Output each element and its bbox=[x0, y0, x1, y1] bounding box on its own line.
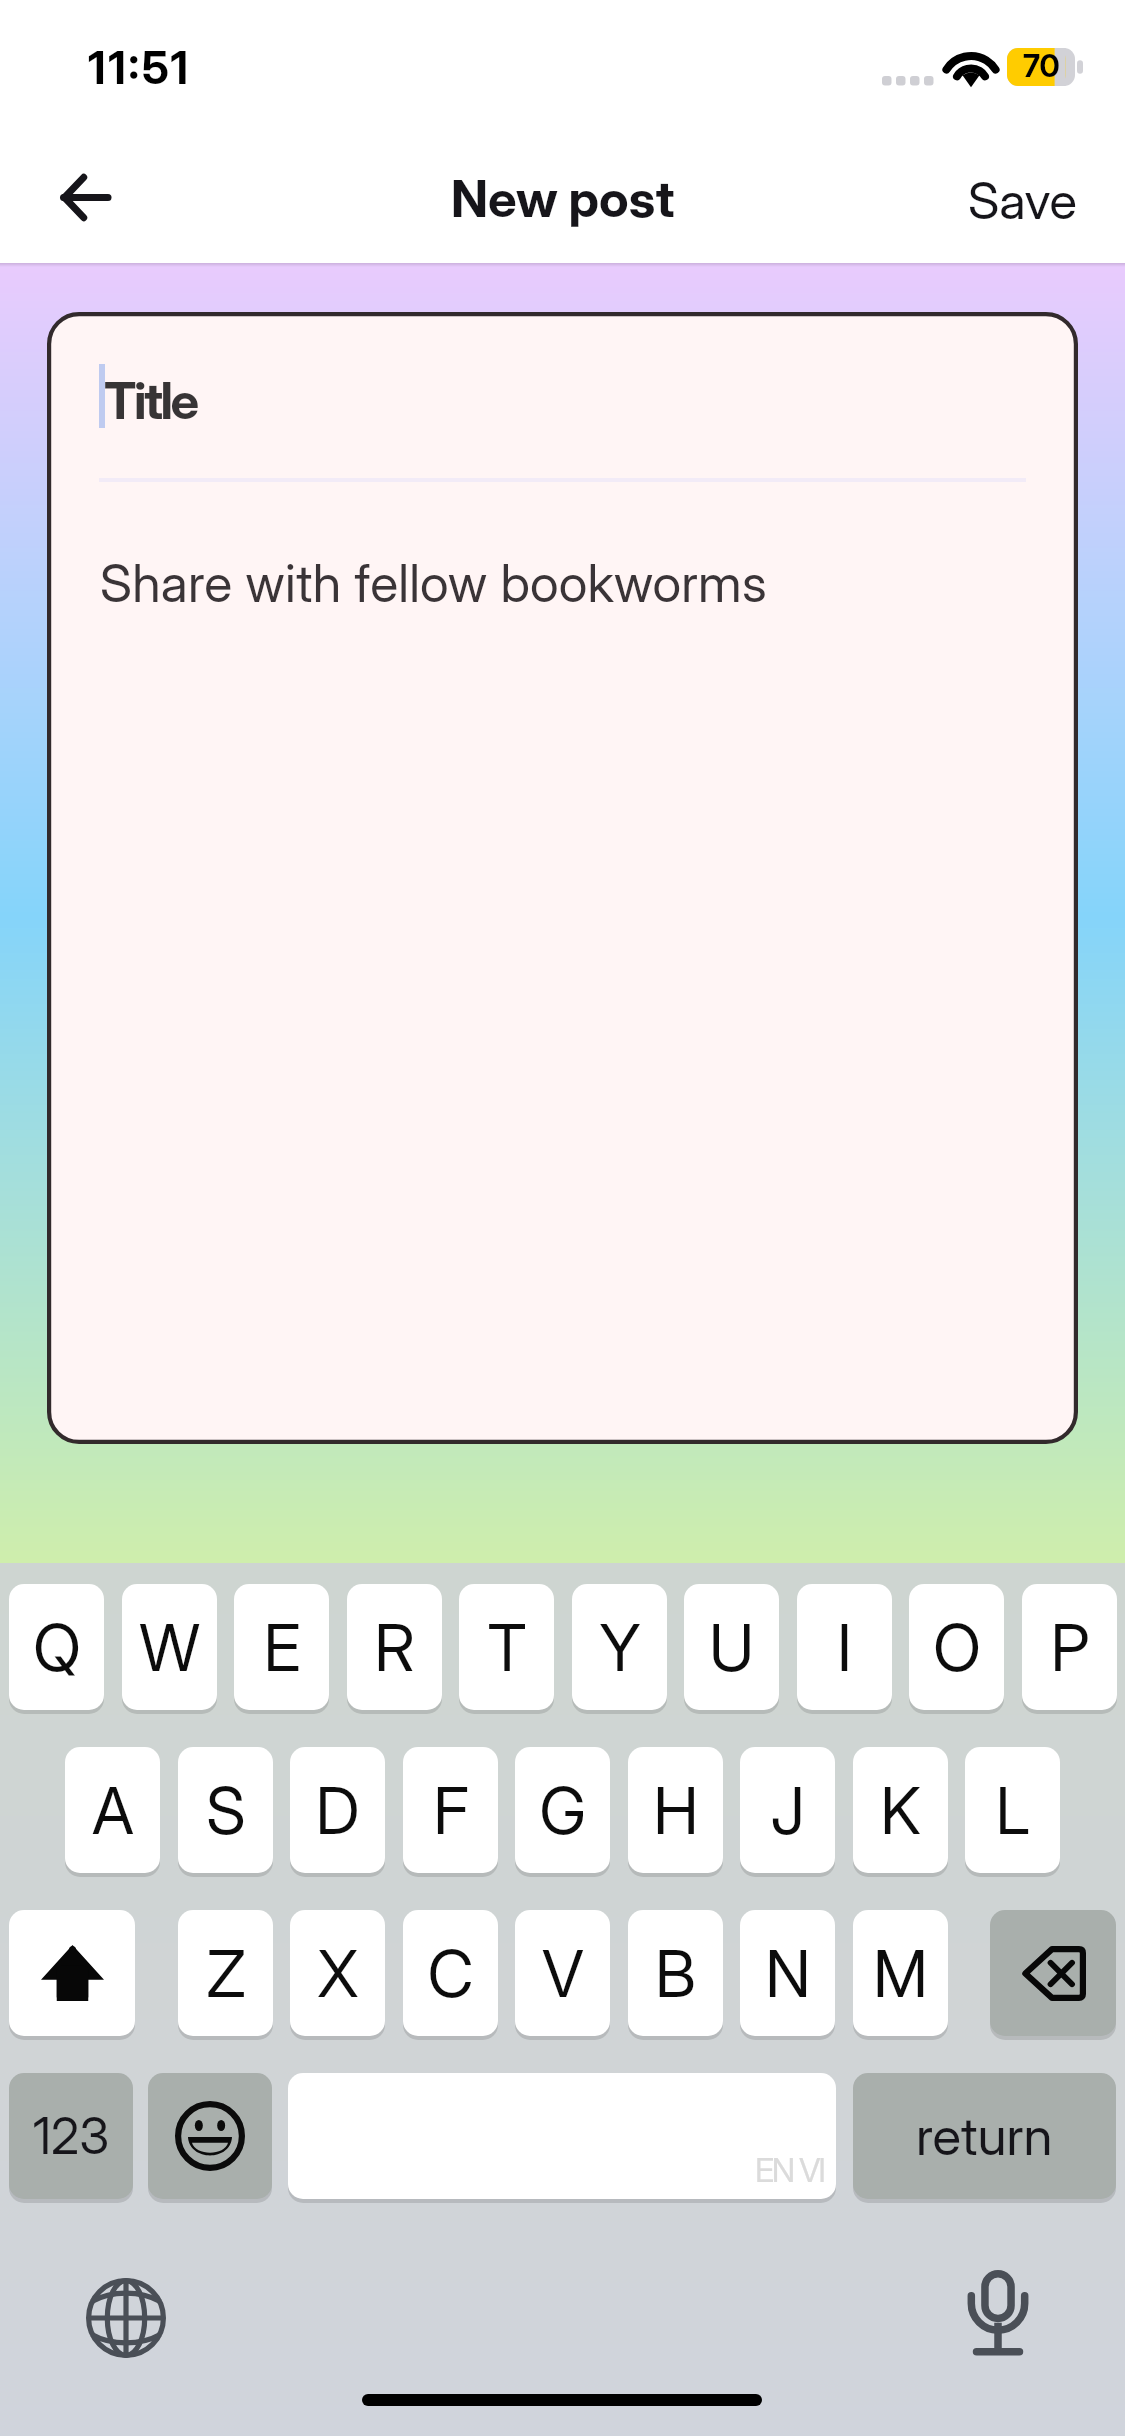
staticText: K bbox=[880, 1772, 921, 1849]
button[interactable]: Backspace bbox=[990, 1910, 1116, 2036]
button[interactable]: V bbox=[515, 1910, 610, 2036]
button[interactable]: U bbox=[684, 1584, 779, 1710]
staticText: J bbox=[770, 1772, 805, 1849]
button[interactable]: A bbox=[65, 1747, 160, 1873]
staticText: I bbox=[837, 1609, 852, 1686]
button[interactable]: Save bbox=[944, 154, 1100, 250]
staticText: Title bbox=[104, 370, 197, 432]
staticText: R bbox=[374, 1609, 415, 1686]
staticText: G bbox=[539, 1772, 586, 1849]
button[interactable]: E bbox=[234, 1584, 329, 1710]
button[interactable]: Shift bbox=[9, 1910, 135, 2036]
button[interactable]: I bbox=[797, 1584, 892, 1710]
button[interactable]: Back bbox=[24, 149, 144, 245]
staticText: E bbox=[263, 1609, 301, 1686]
button[interactable]: Q bbox=[9, 1584, 104, 1710]
button[interactable]: C bbox=[403, 1910, 498, 2036]
staticText: P bbox=[1050, 1609, 1090, 1686]
staticText: C bbox=[427, 1935, 474, 2012]
button[interactable]: return bbox=[853, 2073, 1116, 2199]
staticText: W bbox=[139, 1609, 200, 1686]
button[interactable]: R bbox=[347, 1584, 442, 1710]
staticText: O bbox=[933, 1609, 981, 1686]
staticText: Z bbox=[206, 1935, 246, 2012]
button[interactable]: T bbox=[459, 1584, 554, 1710]
staticText: N bbox=[765, 1935, 811, 2012]
staticText: 70 bbox=[1023, 47, 1060, 85]
button[interactable]: Y bbox=[572, 1584, 667, 1710]
staticText: Y bbox=[599, 1609, 641, 1686]
button[interactable]: Z bbox=[178, 1910, 273, 2036]
staticText: F bbox=[433, 1772, 469, 1849]
button[interactable]: S bbox=[178, 1747, 273, 1873]
staticText: S bbox=[206, 1772, 246, 1849]
staticText: D bbox=[315, 1772, 360, 1849]
button[interactable]: Change keyboard language bbox=[76, 2268, 176, 2368]
button[interactable]: L bbox=[965, 1747, 1060, 1873]
button[interactable]: P bbox=[1022, 1584, 1117, 1710]
staticText: Q bbox=[33, 1609, 81, 1686]
button[interactable]: M bbox=[853, 1910, 948, 2036]
staticText: New post bbox=[451, 168, 675, 230]
staticText: V bbox=[542, 1935, 584, 2012]
button[interactable]: Space bbox=[288, 2073, 836, 2199]
staticText: L bbox=[995, 1772, 1030, 1849]
button[interactable]: G bbox=[515, 1747, 610, 1873]
button[interactable]: K bbox=[853, 1747, 948, 1873]
button[interactable]: B bbox=[628, 1910, 723, 2036]
staticText: B bbox=[655, 1935, 696, 2012]
staticText: Share with fellow bookworms bbox=[100, 552, 767, 615]
staticText: return bbox=[916, 2104, 1053, 2168]
staticText: M bbox=[873, 1935, 928, 2012]
button[interactable]: N bbox=[740, 1910, 835, 2036]
staticText: T bbox=[487, 1609, 527, 1686]
button[interactable]: D bbox=[290, 1747, 385, 1873]
button[interactable]: 123 bbox=[9, 2073, 133, 2199]
staticText: EN VI bbox=[755, 2150, 824, 2190]
button[interactable]: Title bbox=[47, 312, 1078, 1444]
button[interactable]: H bbox=[628, 1747, 723, 1873]
button[interactable]: Dictation bbox=[948, 2263, 1048, 2363]
button[interactable]: O bbox=[909, 1584, 1004, 1710]
staticText: Save bbox=[968, 170, 1077, 232]
button[interactable]: F bbox=[403, 1747, 498, 1873]
staticText: U bbox=[709, 1609, 754, 1686]
button[interactable]: Emoji bbox=[148, 2073, 272, 2199]
button[interactable]: J bbox=[740, 1747, 835, 1873]
staticText: 11:51 bbox=[88, 40, 191, 94]
button[interactable]: X bbox=[290, 1910, 385, 2036]
staticText: X bbox=[317, 1935, 359, 2012]
button[interactable]: W bbox=[122, 1584, 217, 1710]
staticText: H bbox=[653, 1772, 699, 1849]
staticText: A bbox=[92, 1772, 134, 1849]
staticText: 123 bbox=[33, 2106, 110, 2166]
